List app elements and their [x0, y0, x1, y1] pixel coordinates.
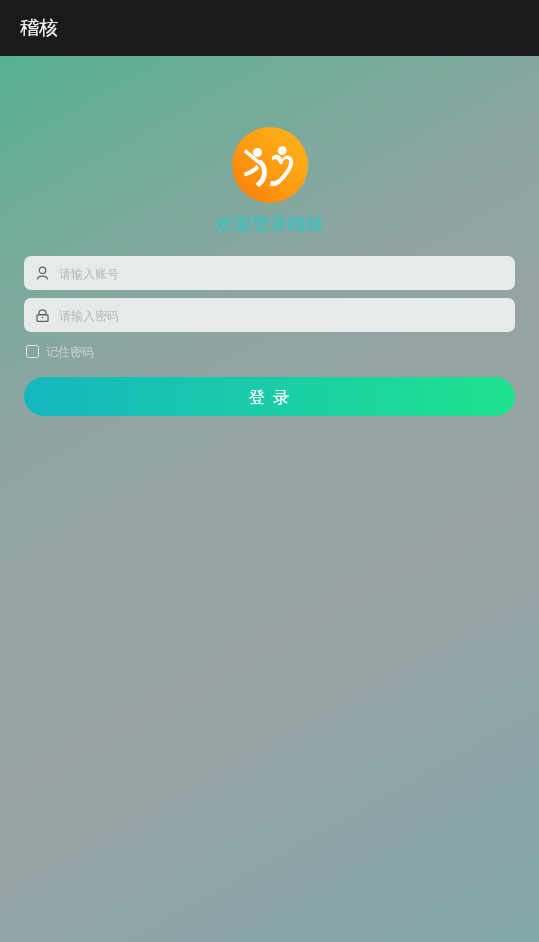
- button[interactable]: 请输入密码: [24, 298, 515, 332]
- staticText: 登 录: [249, 386, 290, 408]
- staticText: 稽核: [20, 16, 58, 40]
- button[interactable]: 请输入账号: [24, 256, 515, 290]
- staticText: 欢迎登录稽核: [0, 213, 539, 236]
- button[interactable]: 记住密码: [24, 341, 96, 362]
- other: App logo: [232, 127, 308, 203]
- staticText: 请输入账号: [59, 266, 119, 281]
- staticText: 记住密码: [46, 344, 94, 359]
- staticText: 请输入密码: [59, 308, 119, 323]
- button[interactable]: 登 录: [24, 377, 515, 416]
